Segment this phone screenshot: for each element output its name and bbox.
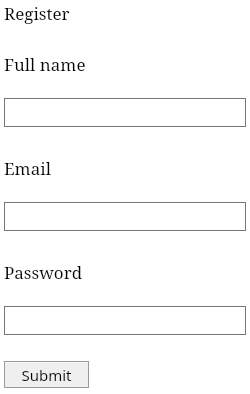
- staticText: Full name: [4, 53, 86, 76]
- staticText: Password: [4, 261, 83, 284]
- button[interactable]: Email input: [4, 202, 246, 231]
- staticText: Register: [4, 2, 70, 25]
- button[interactable]: Submit: [4, 361, 89, 388]
- button[interactable]: Password input: [4, 306, 246, 335]
- button[interactable]: Full name input: [4, 98, 246, 127]
- staticText: Email: [4, 157, 51, 180]
- staticText: Submit: [21, 365, 72, 385]
